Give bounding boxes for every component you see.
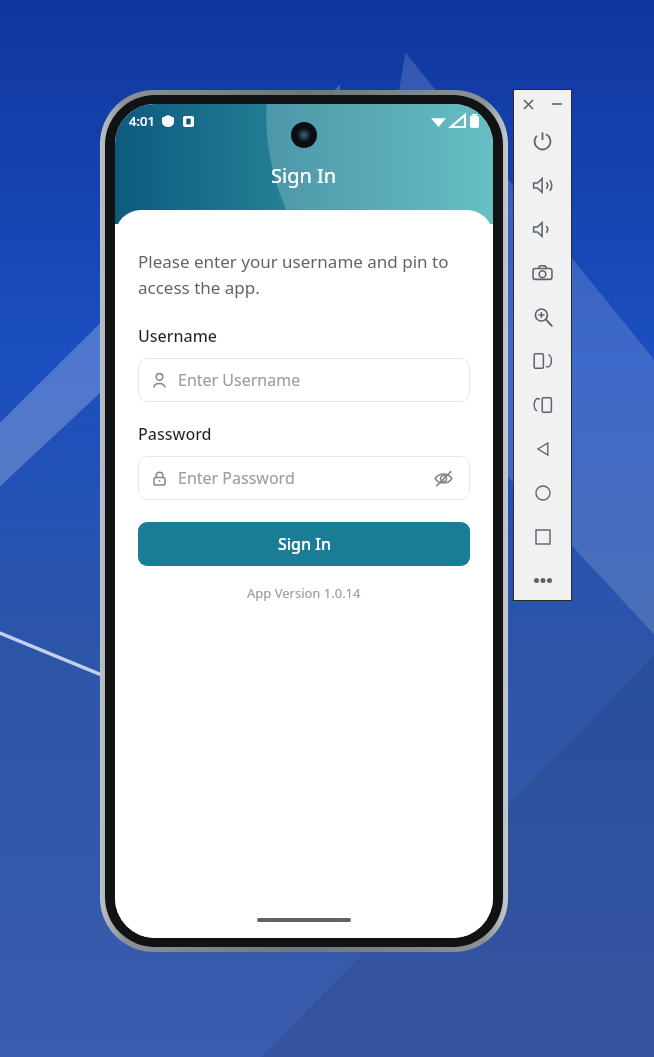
button[interactable]: Overview [513,515,572,559]
staticText: App Version 1.0.14 [247,584,361,602]
button[interactable]: Take screenshot [513,251,572,295]
button[interactable]: Sign In [138,522,470,566]
button[interactable]: Close [520,96,536,112]
button[interactable]: Volume up [513,163,572,207]
button[interactable]: Show password [430,465,456,491]
staticText: Sign In [271,162,337,189]
staticText: Password [138,423,212,445]
staticText: Enter Password [178,467,295,489]
button[interactable]: Minimize [549,96,565,112]
staticText: Enter Username [178,369,301,391]
button[interactable]: Zoom [513,295,572,339]
staticText: Sign In [278,533,331,555]
button[interactable]: More [513,559,572,601]
staticText: 4:01 [129,112,155,130]
staticText: Username [138,325,218,347]
button[interactable]: Power [513,119,572,163]
button[interactable]: Rotate right [513,383,572,427]
button[interactable]: Home [513,471,572,515]
button[interactable]: Volume down [513,207,572,251]
staticText: Please enter your username and pin to ac… [138,250,470,299]
button[interactable]: Back [513,427,572,471]
button[interactable]: Rotate left [513,339,572,383]
button[interactable]: Enter Password [138,456,470,500]
button[interactable]: Enter Username [138,358,470,402]
